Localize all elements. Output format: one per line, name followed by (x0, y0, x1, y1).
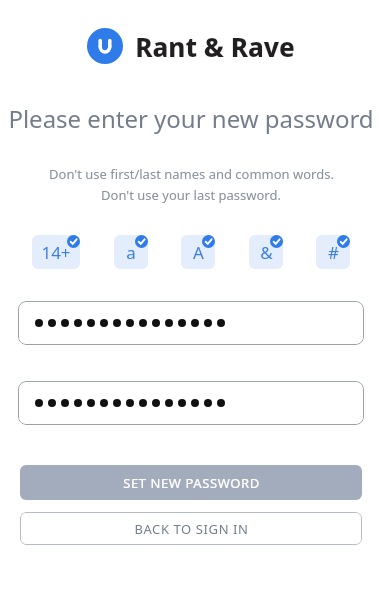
staticText: a (126, 241, 136, 264)
button[interactable]: a (114, 235, 148, 269)
staticText: 14+ (41, 241, 71, 264)
button[interactable]: # (316, 235, 350, 269)
staticText: Please enter your new password (8, 102, 374, 135)
staticText: Don't use your last password. (101, 186, 281, 204)
staticText: BACK TO SIGN IN (134, 520, 249, 538)
staticText: Don't use first/last names and common wo… (49, 165, 334, 183)
button[interactable]: Password field (18, 381, 364, 425)
button[interactable]: Password field (18, 301, 364, 345)
staticText: A (193, 241, 204, 264)
staticText: Rant & Rave (135, 29, 295, 64)
button[interactable]: BACK TO SIGN IN (20, 512, 362, 545)
staticText: SET NEW PASSWORD (123, 474, 260, 492)
button[interactable]: 14+ (32, 235, 80, 269)
button[interactable]: A (181, 235, 215, 269)
button[interactable]: SET NEW PASSWORD (20, 465, 362, 500)
staticText: & (260, 241, 273, 264)
button[interactable]: & (249, 235, 283, 269)
staticText: # (328, 241, 339, 264)
